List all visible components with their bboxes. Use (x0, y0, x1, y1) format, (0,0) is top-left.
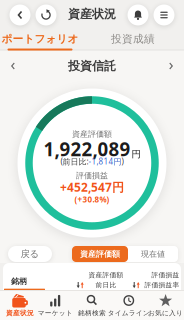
staticText: ) (121, 156, 123, 167)
staticText: ポートフォリオ (1, 32, 78, 45)
button[interactable]: Menu (153, 4, 175, 26)
staticText: 現在値 (141, 249, 165, 259)
staticText: 前日比 (95, 281, 116, 289)
staticText: +452,547円 (60, 179, 124, 195)
staticText: 評価損益 (76, 171, 108, 180)
button[interactable]: ポートフォリオ (0, 31, 80, 51)
staticText: マーケット (38, 309, 73, 317)
button[interactable]: 資産状況 (1, 290, 38, 320)
staticText: タイムライン (108, 309, 150, 317)
staticText: -1,814円 (88, 156, 121, 167)
button[interactable]: Back (9, 4, 31, 26)
staticText: 資産評価額 (80, 249, 120, 259)
button[interactable]: タイムライン (110, 290, 147, 320)
button[interactable]: マーケット (37, 290, 74, 320)
button[interactable]: Next (162, 57, 180, 75)
staticText: 評価損益率 (144, 281, 179, 289)
staticText: お気に入り (148, 309, 183, 317)
staticText: 円 (131, 148, 140, 160)
staticText: 資産状況 (6, 309, 34, 317)
staticText: 資産状況 (68, 7, 116, 21)
button[interactable]: 評価損益 (127, 270, 184, 290)
button[interactable]: 資産評価額 (64, 270, 136, 290)
staticText: 投資信託 (68, 59, 116, 73)
staticText: 銘柄 (11, 276, 27, 286)
button[interactable]: 銘柄 (4, 276, 45, 290)
staticText: 資産評価額 (72, 129, 112, 139)
button[interactable]: 現在値 (128, 246, 178, 262)
button[interactable]: Notifications (127, 4, 149, 26)
staticText: (前日比: (60, 156, 88, 167)
button[interactable]: 資産評価額 (72, 246, 128, 262)
button[interactable]: 戻る (8, 246, 52, 262)
staticText: 銘柄検索 (78, 309, 106, 317)
staticText: 戻る (20, 248, 39, 260)
staticText: 評価損益 (151, 271, 179, 279)
button[interactable]: Previous (4, 57, 22, 75)
button[interactable]: 銘柄検索 (73, 290, 110, 320)
button[interactable]: Refresh (35, 4, 57, 26)
staticText: 投資成績 (111, 32, 155, 45)
staticText: 1,922,089 (43, 137, 130, 161)
staticText: (+30.8%) (74, 194, 109, 205)
staticText: 資産評価額 (88, 271, 123, 279)
button[interactable]: 投資成績 (93, 29, 173, 49)
button[interactable]: お気に入り (147, 290, 184, 320)
